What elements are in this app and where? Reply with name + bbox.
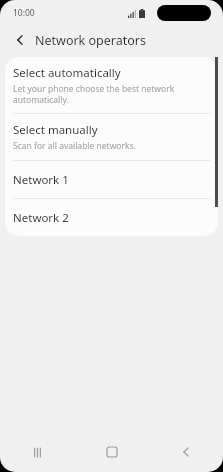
staticText: Network 2 xyxy=(13,210,69,226)
button[interactable]: Recents xyxy=(0,436,75,468)
button[interactable]: Back xyxy=(11,31,29,49)
staticText: Network 1 xyxy=(13,172,69,188)
button[interactable]: Select automatically xyxy=(5,57,218,113)
staticText: 10:00 xyxy=(13,7,35,19)
button[interactable]: Network 2 xyxy=(5,199,218,236)
staticText: Scan for all available networks. xyxy=(13,140,136,152)
button[interactable]: Network 1 xyxy=(5,161,218,198)
button[interactable]: Select manually xyxy=(5,114,218,160)
button[interactable]: Back xyxy=(149,436,223,468)
staticText: Select manually xyxy=(13,122,98,138)
staticText: Network operators xyxy=(35,32,146,49)
staticText: Select automatically xyxy=(13,65,121,81)
staticText: Let your phone choose the best network a… xyxy=(13,83,202,105)
button[interactable]: Home xyxy=(75,436,149,468)
